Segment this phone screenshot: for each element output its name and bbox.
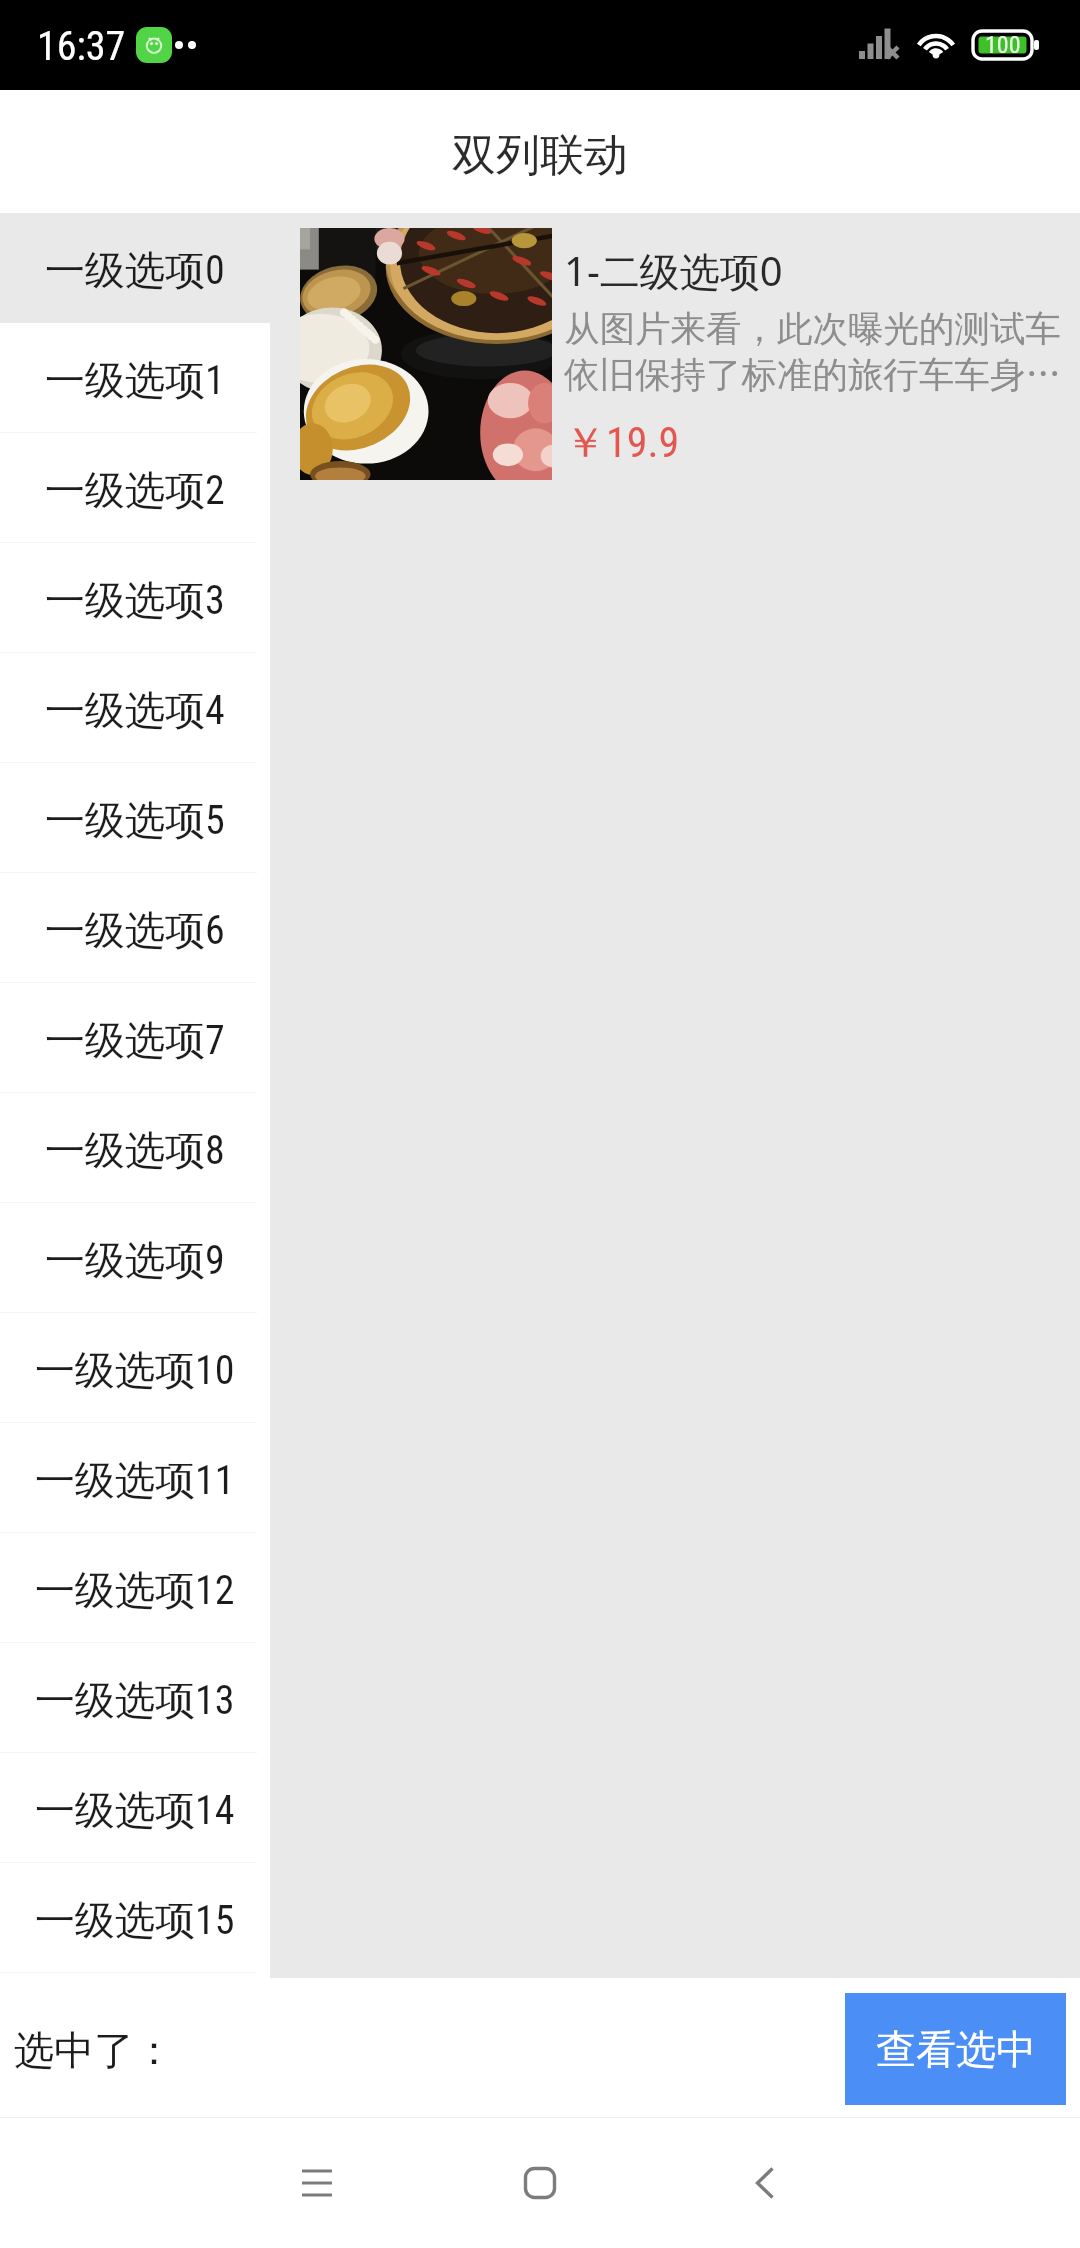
button[interactable]: 一级选项10 xyxy=(0,1313,270,1423)
staticText: 一级选项13 xyxy=(35,1675,235,1725)
staticText: 查看选中 xyxy=(876,2024,1036,2074)
button[interactable]: 一级选项1 xyxy=(0,323,270,433)
staticText: 双列联动 xyxy=(452,128,628,183)
staticText: 一级选项9 xyxy=(45,1235,225,1285)
button[interactable]: 一级选项14 xyxy=(0,1753,270,1863)
staticText: 一级选项6 xyxy=(45,905,225,955)
button[interactable]: 一级选项0 xyxy=(0,213,270,323)
button[interactable]: Back xyxy=(705,2123,825,2243)
staticText: 一级选项15 xyxy=(35,1895,235,1945)
staticText: 1-二级选项0 xyxy=(564,243,783,298)
staticText: 一级选项7 xyxy=(45,1015,225,1065)
staticText: 一级选项11 xyxy=(35,1455,235,1505)
button[interactable]: 1-二级选项0 xyxy=(270,213,1080,495)
button[interactable]: Recent apps xyxy=(257,2123,377,2243)
staticText: 一级选项4 xyxy=(45,685,225,735)
staticText: 选中了： xyxy=(14,2025,174,2075)
button[interactable]: 一级选项4 xyxy=(0,653,270,763)
button[interactable]: 一级选项13 xyxy=(0,1643,270,1753)
staticText: 一级选项2 xyxy=(45,465,225,515)
staticText: 一级选项12 xyxy=(35,1565,235,1615)
staticText: 一级选项5 xyxy=(45,795,225,845)
staticText: ￥19.9 xyxy=(564,417,680,470)
staticText: 16:37 xyxy=(37,23,126,70)
button[interactable]: 查看选中 xyxy=(845,1993,1066,2105)
button[interactable]: 一级选项9 xyxy=(0,1203,270,1313)
button[interactable]: Home xyxy=(480,2123,600,2243)
button[interactable]: 一级选项6 xyxy=(0,873,270,983)
staticText: 一级选项0 xyxy=(45,245,225,295)
button[interactable]: 一级选项8 xyxy=(0,1093,270,1203)
button[interactable]: 一级选项12 xyxy=(0,1533,270,1643)
button[interactable]: 一级选项2 xyxy=(0,433,270,543)
button[interactable]: 一级选项7 xyxy=(0,983,270,1093)
staticText: 一级选项10 xyxy=(35,1345,235,1395)
button[interactable]: 一级选项15 xyxy=(0,1863,270,1973)
staticText: 一级选项1 xyxy=(45,355,225,405)
button[interactable]: 一级选项5 xyxy=(0,763,270,873)
button[interactable]: 一级选项3 xyxy=(0,543,270,653)
button[interactable]: 一级选项11 xyxy=(0,1423,270,1533)
staticText: 一级选项8 xyxy=(45,1125,225,1175)
staticText: 一级选项14 xyxy=(35,1785,235,1835)
staticText: 从图片来看，此次曝光的测试车依旧保持了标准的旅行车车身，但是前脸部分 xyxy=(564,307,1066,397)
staticText: 100 xyxy=(985,31,1021,59)
staticText: 一级选项3 xyxy=(45,575,225,625)
